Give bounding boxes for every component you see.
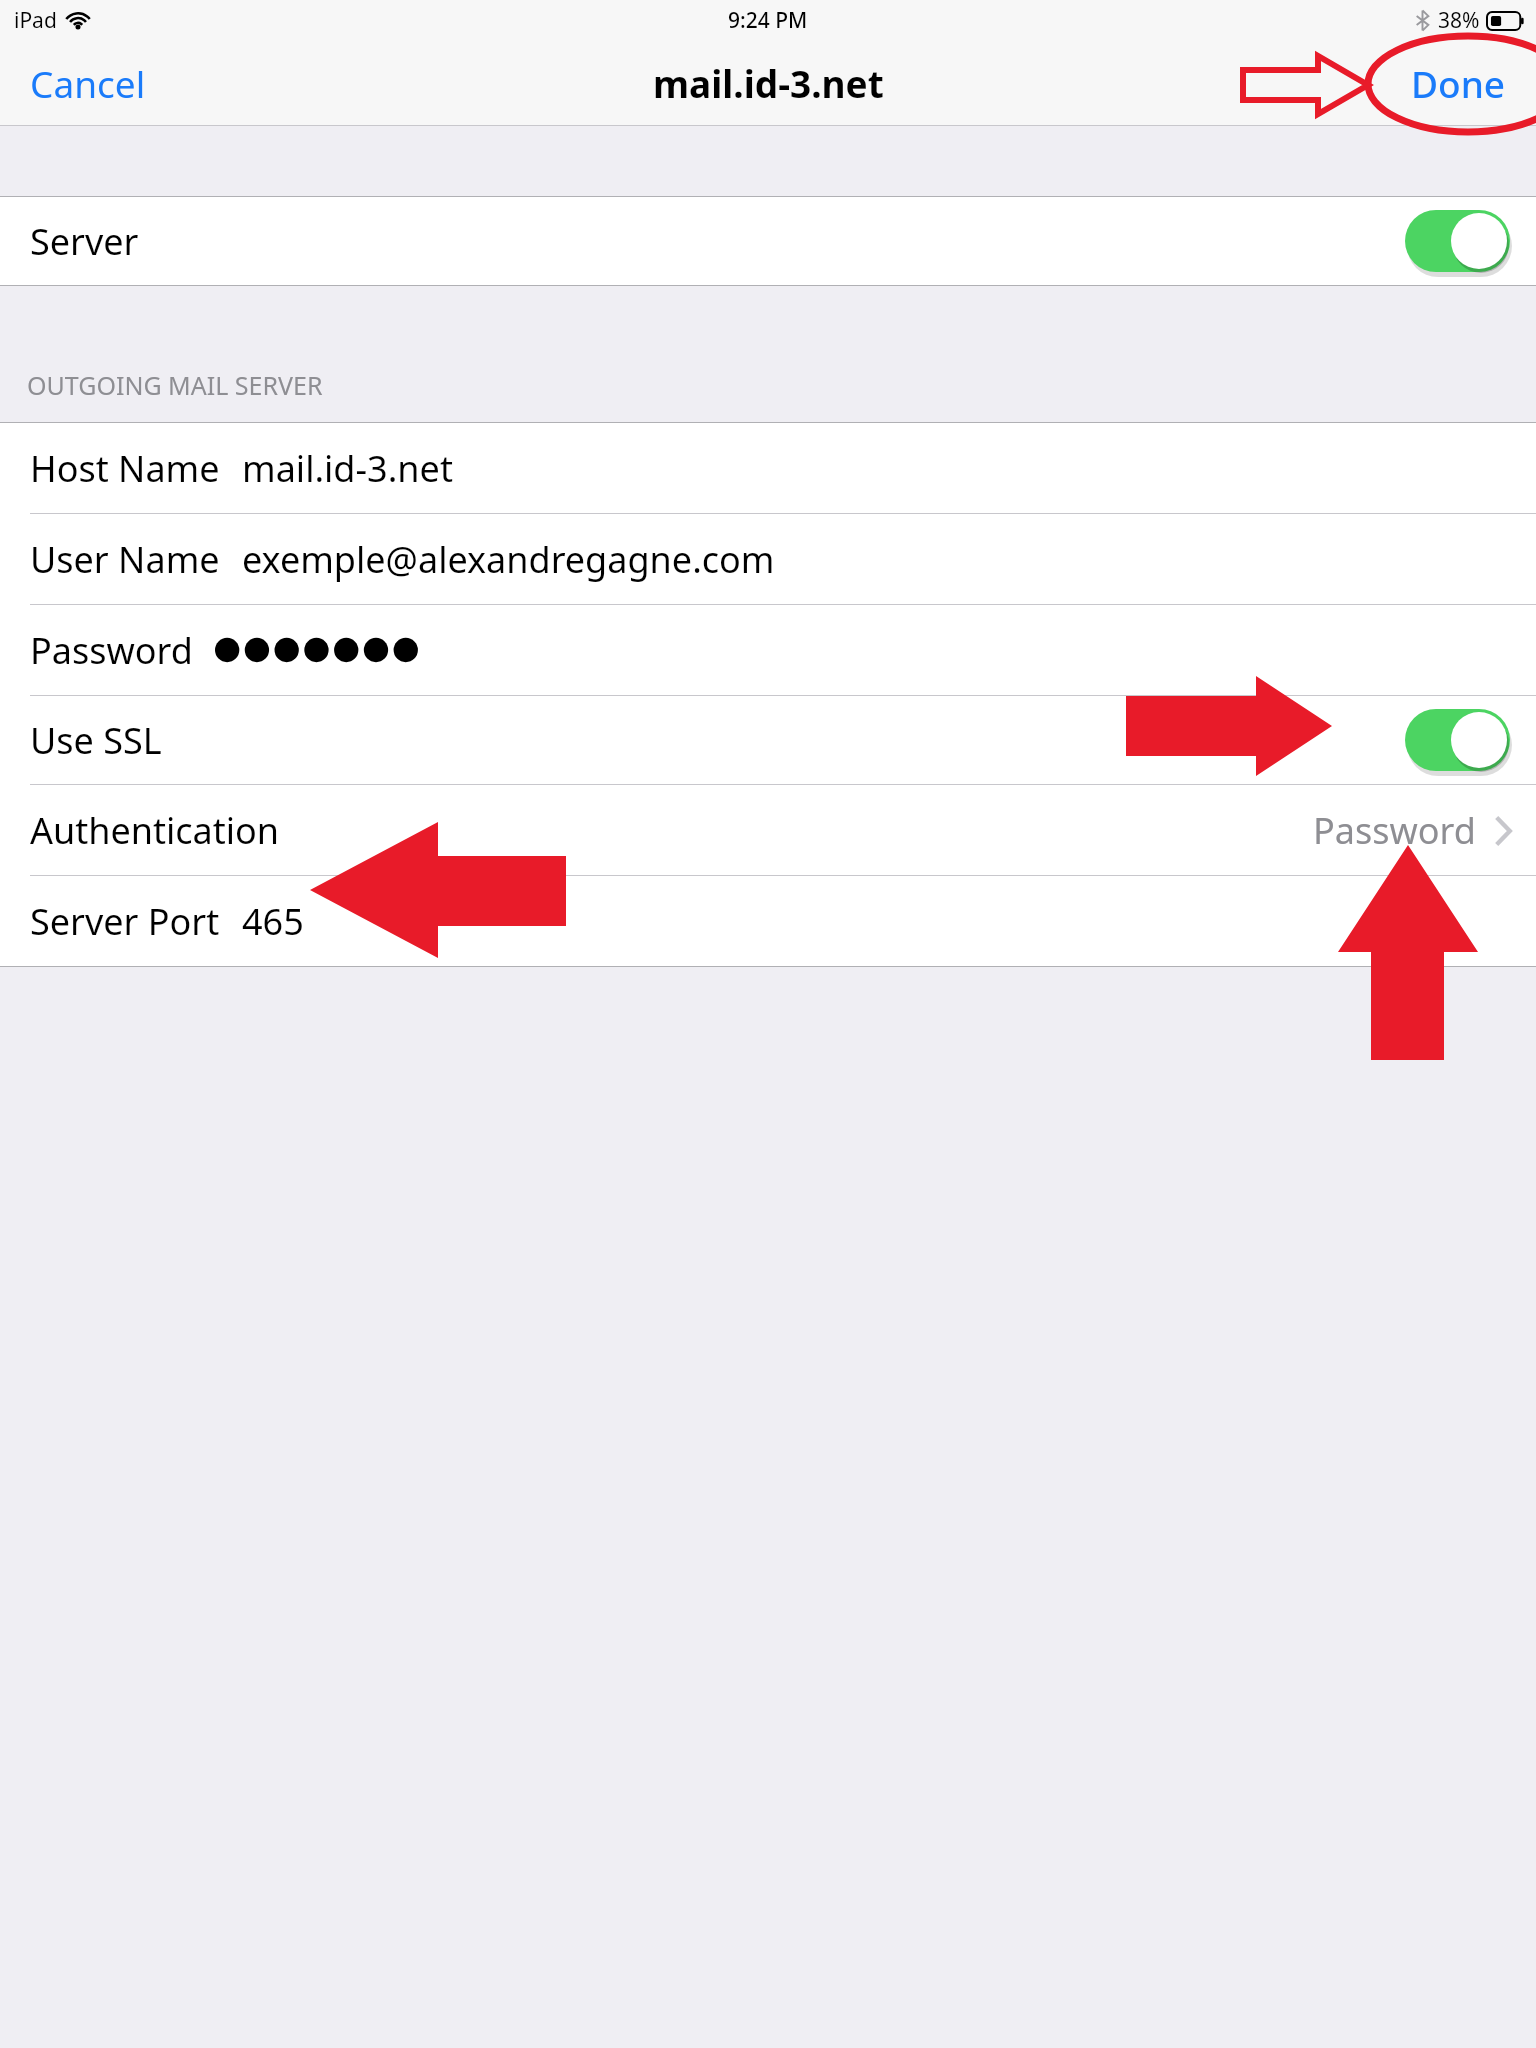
- staticText: Use SSL: [30, 716, 162, 765]
- button[interactable]: Server: [0, 197, 1536, 285]
- staticText: mail.id-3.net: [242, 444, 453, 493]
- staticText: 465: [242, 897, 304, 946]
- staticText: 38%: [1438, 6, 1480, 35]
- staticText: Authentication: [30, 806, 280, 855]
- staticText: Password: [30, 626, 193, 675]
- staticText: Done: [1411, 58, 1506, 107]
- staticText: exemple@alexandregagne.com: [242, 535, 775, 584]
- staticText: Host Name: [30, 444, 220, 493]
- button[interactable]: Use SSL switch, on: [1405, 709, 1510, 771]
- staticText: 9:24 PM: [728, 6, 808, 35]
- staticText: User Name: [30, 535, 220, 584]
- button[interactable]: Server switch, on: [1405, 210, 1510, 272]
- staticText: OUTGOING MAIL SERVER: [27, 368, 323, 402]
- button[interactable]: Password: [0, 605, 1536, 695]
- button[interactable]: Authentication: [0, 785, 1536, 875]
- button[interactable]: User Name: [0, 514, 1536, 604]
- staticText: Server Port: [30, 897, 220, 946]
- button[interactable]: Done: [1381, 40, 1536, 125]
- button[interactable]: Cancel: [0, 40, 176, 125]
- button[interactable]: Host Name: [0, 423, 1536, 513]
- staticText: Server: [30, 217, 139, 266]
- staticText: Password: [1313, 806, 1476, 855]
- button[interactable]: Use SSL: [0, 696, 1536, 784]
- staticText: iPad: [14, 6, 57, 35]
- staticText: mail.id-3.net: [653, 58, 884, 108]
- button[interactable]: Server Port: [0, 876, 1536, 966]
- staticText: Cancel: [30, 58, 146, 107]
